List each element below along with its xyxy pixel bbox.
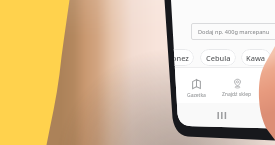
staticText: onez	[172, 53, 189, 63]
button[interactable]: Gazetka	[176, 79, 216, 99]
button[interactable]: Dodaj np. 400g marcepanu	[191, 23, 275, 40]
button[interactable]: Cebula	[200, 49, 236, 66]
button[interactable]: onez	[171, 49, 194, 66]
staticText: Dodaj np. 400g marcepanu	[198, 28, 270, 36]
staticText: Gazetka	[187, 92, 206, 99]
staticText: Kawa	[246, 53, 266, 63]
button[interactable]: Kawa	[241, 49, 271, 66]
staticText: Cebula	[206, 53, 231, 63]
staticText: Znajdź sklep	[222, 91, 252, 98]
button[interactable]: Znajdź sklep	[217, 79, 257, 98]
